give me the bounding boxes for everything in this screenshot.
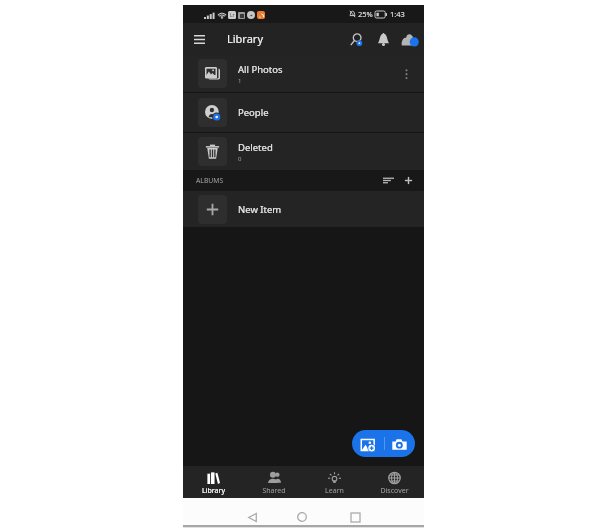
button[interactable]: Sort xyxy=(374,170,402,191)
button[interactable]: Recents xyxy=(343,505,367,529)
button[interactable]: Deleted xyxy=(183,133,424,170)
button[interactable]: All Photos xyxy=(183,55,424,92)
button[interactable]: Add photo or take picture xyxy=(352,430,415,457)
staticText: 1 xyxy=(238,77,242,85)
staticText: 25% xyxy=(358,9,373,19)
button[interactable]: Add album xyxy=(394,170,422,191)
staticText: Library xyxy=(227,31,264,46)
button[interactable]: People xyxy=(183,93,424,132)
button[interactable]: New Item xyxy=(183,191,424,227)
button[interactable]: Search xyxy=(344,27,368,51)
staticText: 0 xyxy=(238,155,242,163)
staticText: New Item xyxy=(238,203,282,216)
staticText: ALBUMS xyxy=(196,176,224,185)
button[interactable]: Learn xyxy=(304,466,364,498)
button[interactable]: Discover xyxy=(364,466,424,498)
button[interactable]: Menu xyxy=(187,27,211,51)
button[interactable]: Library xyxy=(183,466,244,498)
staticText: All Photos xyxy=(238,63,283,76)
staticText: Library xyxy=(202,486,225,496)
button[interactable]: Notifications xyxy=(371,27,395,51)
staticText: Deleted xyxy=(238,141,273,154)
button[interactable]: Back xyxy=(240,505,264,529)
staticText: Discover xyxy=(380,486,409,496)
button[interactable]: Cloud status xyxy=(397,27,421,51)
staticText: 1:43 xyxy=(390,9,405,19)
button[interactable]: More options xyxy=(394,62,418,86)
button[interactable]: Home xyxy=(290,505,314,529)
staticText: People xyxy=(238,106,269,119)
staticText: Lr xyxy=(230,12,235,19)
button[interactable]: Shared xyxy=(244,466,304,498)
staticText: Shared xyxy=(262,486,286,496)
staticText: Learn xyxy=(325,486,344,496)
